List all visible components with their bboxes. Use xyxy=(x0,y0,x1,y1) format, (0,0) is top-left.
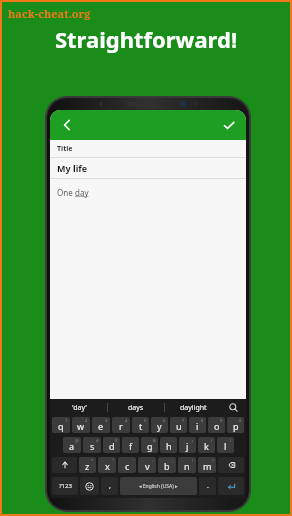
staticText: days xyxy=(128,403,144,413)
staticText: & xyxy=(153,438,156,443)
staticText: y xyxy=(157,420,162,432)
staticText: r xyxy=(119,420,123,432)
button[interactable]: One xyxy=(57,179,246,205)
staticText: ? xyxy=(212,458,214,463)
staticText: , xyxy=(109,481,111,491)
button[interactable]: - xyxy=(160,437,177,453)
staticText: s xyxy=(90,440,95,452)
staticText: ?123 xyxy=(59,482,72,490)
staticText: ' xyxy=(133,458,134,463)
button[interactable]: ; xyxy=(158,457,176,473)
button[interactable]: ! xyxy=(178,457,196,473)
staticText: h xyxy=(166,440,172,452)
button[interactable]: , xyxy=(101,477,118,495)
staticText: f xyxy=(129,440,133,452)
button[interactable]: @ xyxy=(63,437,81,453)
staticText: . xyxy=(207,481,209,491)
button[interactable]: Backspace xyxy=(218,457,244,473)
button[interactable]: : xyxy=(138,457,156,473)
staticText: My life xyxy=(57,162,88,174)
button[interactable]: ?123 xyxy=(52,477,78,495)
staticText: $ xyxy=(115,438,118,443)
button[interactable]: 5 xyxy=(132,417,149,433)
staticText: ( xyxy=(211,438,213,443)
staticText: 2 xyxy=(85,418,88,423)
button[interactable]: ' xyxy=(118,457,136,473)
staticText: Straightforward! xyxy=(2,24,290,54)
staticText: Title xyxy=(57,144,73,154)
staticText: j xyxy=(186,440,189,452)
button[interactable]: 3 xyxy=(92,417,110,433)
staticText: : xyxy=(152,458,154,463)
button[interactable]: 9 xyxy=(208,417,225,433)
button[interactable]: 6 xyxy=(151,417,168,433)
staticText: b xyxy=(164,460,170,472)
staticText: daylight xyxy=(180,403,207,413)
staticText: 4 xyxy=(125,418,128,423)
staticText: x xyxy=(105,460,110,472)
button[interactable]: 2 xyxy=(72,417,90,433)
staticText: day xyxy=(75,187,89,198)
staticText: k xyxy=(204,440,209,452)
staticText: - xyxy=(173,438,175,443)
staticText: z xyxy=(85,460,90,472)
button[interactable]: My life xyxy=(57,158,246,178)
button[interactable]: * xyxy=(79,457,96,473)
staticText: * xyxy=(91,458,94,463)
staticText: @ xyxy=(75,438,79,443)
button[interactable]: days xyxy=(108,399,164,416)
button[interactable]: daylight xyxy=(165,399,221,416)
button[interactable]: _ xyxy=(122,437,139,453)
staticText: a xyxy=(69,440,75,452)
button[interactable]: ( xyxy=(198,437,215,453)
staticText: n xyxy=(184,460,190,472)
staticText: 6 xyxy=(163,418,166,423)
staticText: g xyxy=(147,440,153,452)
staticText: i xyxy=(196,420,199,432)
button[interactable]: . xyxy=(199,477,216,495)
button[interactable]: 8 xyxy=(189,417,206,433)
staticText: 7 xyxy=(182,418,185,423)
staticText: 1 xyxy=(65,418,68,423)
staticText: + xyxy=(191,438,194,443)
button[interactable]: $ xyxy=(103,437,120,453)
staticText: u xyxy=(176,420,182,432)
staticText: # xyxy=(96,438,99,443)
button[interactable]: ? xyxy=(198,457,216,473)
button[interactable]: Enter xyxy=(218,477,244,495)
button[interactable]: Search xyxy=(221,399,245,416)
button[interactable]: 4 xyxy=(112,417,130,433)
button[interactable]: Back xyxy=(54,112,80,138)
staticText: " xyxy=(112,458,114,463)
button[interactable]: # xyxy=(83,437,101,453)
staticText: v xyxy=(145,460,150,472)
staticText: p xyxy=(233,420,239,432)
staticText: ◂ English (USA) ▸ xyxy=(139,483,178,490)
button[interactable]: Shift xyxy=(52,457,77,473)
staticText: c xyxy=(125,460,130,472)
button[interactable]: ) xyxy=(217,437,234,453)
button[interactable]: + xyxy=(179,437,196,453)
button[interactable]: 'day' xyxy=(51,399,107,416)
staticText: 0 xyxy=(239,418,242,423)
staticText: hack-cheat.org xyxy=(8,6,91,21)
staticText: w xyxy=(77,420,85,432)
staticText: ! xyxy=(192,458,194,463)
button[interactable]: 0 xyxy=(227,417,244,433)
button[interactable]: 7 xyxy=(170,417,187,433)
staticText: m xyxy=(203,460,212,472)
button[interactable]: ◂ English (USA) ▸ xyxy=(120,477,197,495)
staticText: t xyxy=(139,420,143,432)
button[interactable]: 1 xyxy=(52,417,70,433)
staticText: d xyxy=(109,440,115,452)
staticText: l xyxy=(224,440,227,452)
button[interactable]: & xyxy=(141,437,158,453)
button[interactable]: Save xyxy=(216,112,242,138)
staticText: _ xyxy=(135,438,137,443)
button[interactable]: Title xyxy=(57,140,246,157)
staticText: 'day' xyxy=(72,403,87,413)
button[interactable]: " xyxy=(98,457,116,473)
staticText: ; xyxy=(172,458,174,463)
staticText: 8 xyxy=(201,418,204,423)
button[interactable]: Emoji xyxy=(80,477,99,495)
